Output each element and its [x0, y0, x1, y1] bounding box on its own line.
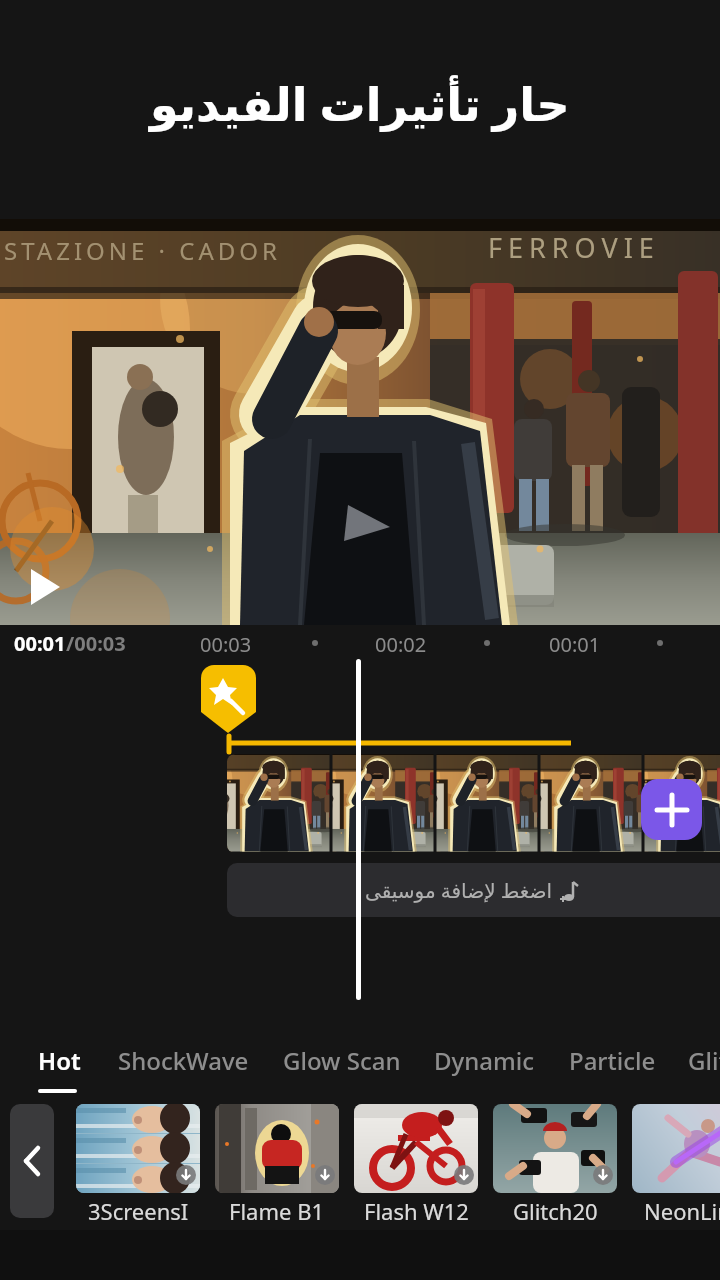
button[interactable]: اضغط لإضافة موسيقى: [227, 863, 720, 917]
staticText: Glitch20: [513, 1196, 598, 1226]
staticText: Particle: [569, 1044, 656, 1077]
button[interactable]: [641, 779, 702, 840]
button[interactable]: Glitch: [688, 1044, 720, 1077]
button[interactable]: [10, 1104, 54, 1218]
staticText: ShockWave: [118, 1044, 249, 1077]
button[interactable]: STAZIONE · CADOR: [0, 219, 720, 625]
staticText: STAZIONE · CADOR: [4, 234, 281, 267]
button[interactable]: [632, 1104, 720, 1193]
staticText: Flame B1: [229, 1196, 325, 1226]
staticText: Dynamic: [434, 1044, 534, 1077]
staticText: 3ScreensI: [88, 1196, 189, 1226]
staticText: Flash W12: [364, 1196, 469, 1226]
staticText: 00:02: [375, 631, 427, 658]
staticText: Glow Scan: [283, 1044, 401, 1077]
button[interactable]: Hot: [38, 1044, 81, 1077]
staticText: FERROVIE: [488, 229, 660, 266]
button[interactable]: Particle: [569, 1044, 656, 1077]
staticText: NeonLine: [644, 1196, 720, 1226]
button[interactable]: Dynamic: [434, 1044, 534, 1077]
staticText: اضغط لإضافة موسيقى: [365, 877, 552, 904]
staticText: حار تأثيرات الفيديو: [150, 72, 570, 135]
staticText: 00:01: [549, 631, 601, 658]
staticText: Hot: [38, 1044, 81, 1077]
button[interactable]: ShockWave: [118, 1044, 249, 1077]
button[interactable]: [215, 1104, 339, 1193]
button[interactable]: [354, 1104, 478, 1193]
button[interactable]: Glow Scan: [283, 1044, 401, 1077]
staticText: Glitch: [688, 1044, 720, 1077]
button[interactable]: [76, 1104, 200, 1193]
staticText: 00:03: [200, 631, 252, 658]
staticText: 00:01: [14, 630, 66, 657]
staticText: /00:03: [66, 630, 126, 657]
button[interactable]: [493, 1104, 617, 1193]
